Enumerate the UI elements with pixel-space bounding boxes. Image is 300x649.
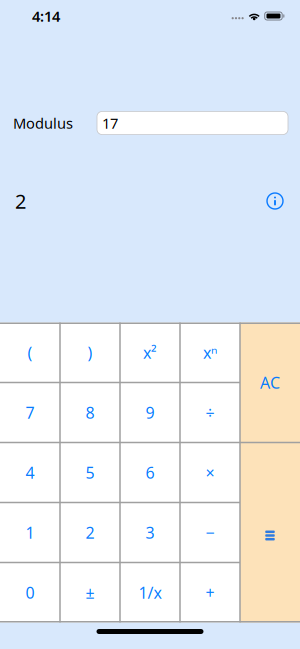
button[interactable]: AC	[240, 322, 300, 442]
button[interactable]: 6	[120, 442, 180, 502]
staticText: 3	[145, 522, 154, 543]
staticText: 4	[25, 462, 34, 483]
button[interactable]: 7	[0, 382, 60, 442]
button[interactable]: )	[60, 322, 120, 382]
staticText: 2	[15, 188, 26, 214]
staticText: 9	[145, 402, 154, 423]
button[interactable]	[266, 192, 284, 210]
staticText: 7	[25, 402, 34, 423]
button[interactable]: x²	[120, 322, 180, 382]
staticText: x²	[143, 342, 157, 363]
button[interactable]: 3	[120, 502, 180, 562]
button[interactable]: 4	[0, 442, 60, 502]
staticText: 8	[85, 402, 94, 423]
button[interactable]	[240, 442, 300, 622]
staticText: 1	[25, 522, 34, 543]
staticText: ±	[85, 582, 94, 603]
button[interactable]: xⁿ	[180, 322, 240, 382]
button[interactable]: 9	[120, 382, 180, 442]
button[interactable]: −	[180, 502, 240, 562]
button[interactable]: ×	[180, 442, 240, 502]
button[interactable]: 1/x	[120, 562, 180, 622]
button[interactable]: +	[180, 562, 240, 622]
staticText: 2	[85, 522, 94, 543]
staticText: 5	[85, 462, 94, 483]
staticText: 0	[25, 582, 34, 603]
button[interactable]: ±	[60, 562, 120, 622]
staticText: AC	[260, 372, 280, 393]
staticText: ×	[205, 462, 214, 483]
button[interactable]: (	[0, 322, 60, 382]
staticText: ÷	[205, 402, 214, 423]
staticText: (	[27, 342, 32, 363]
staticText: 6	[145, 462, 154, 483]
button[interactable]: 5	[60, 442, 120, 502]
staticText: −	[205, 522, 214, 543]
button[interactable]: 1	[0, 502, 60, 562]
button[interactable]: 0	[0, 562, 60, 622]
button[interactable]: 8	[60, 382, 120, 442]
button[interactable]: 2	[60, 502, 120, 562]
staticText: Modulus	[13, 113, 73, 133]
staticText: 4:14	[32, 6, 60, 26]
button[interactable]: 17	[97, 111, 288, 134]
staticText: xⁿ	[203, 342, 217, 363]
staticText: 17	[102, 113, 118, 133]
staticText: +	[205, 582, 214, 603]
staticText: 1/x	[138, 582, 161, 603]
staticText: )	[87, 342, 92, 363]
button[interactable]: ÷	[180, 382, 240, 442]
